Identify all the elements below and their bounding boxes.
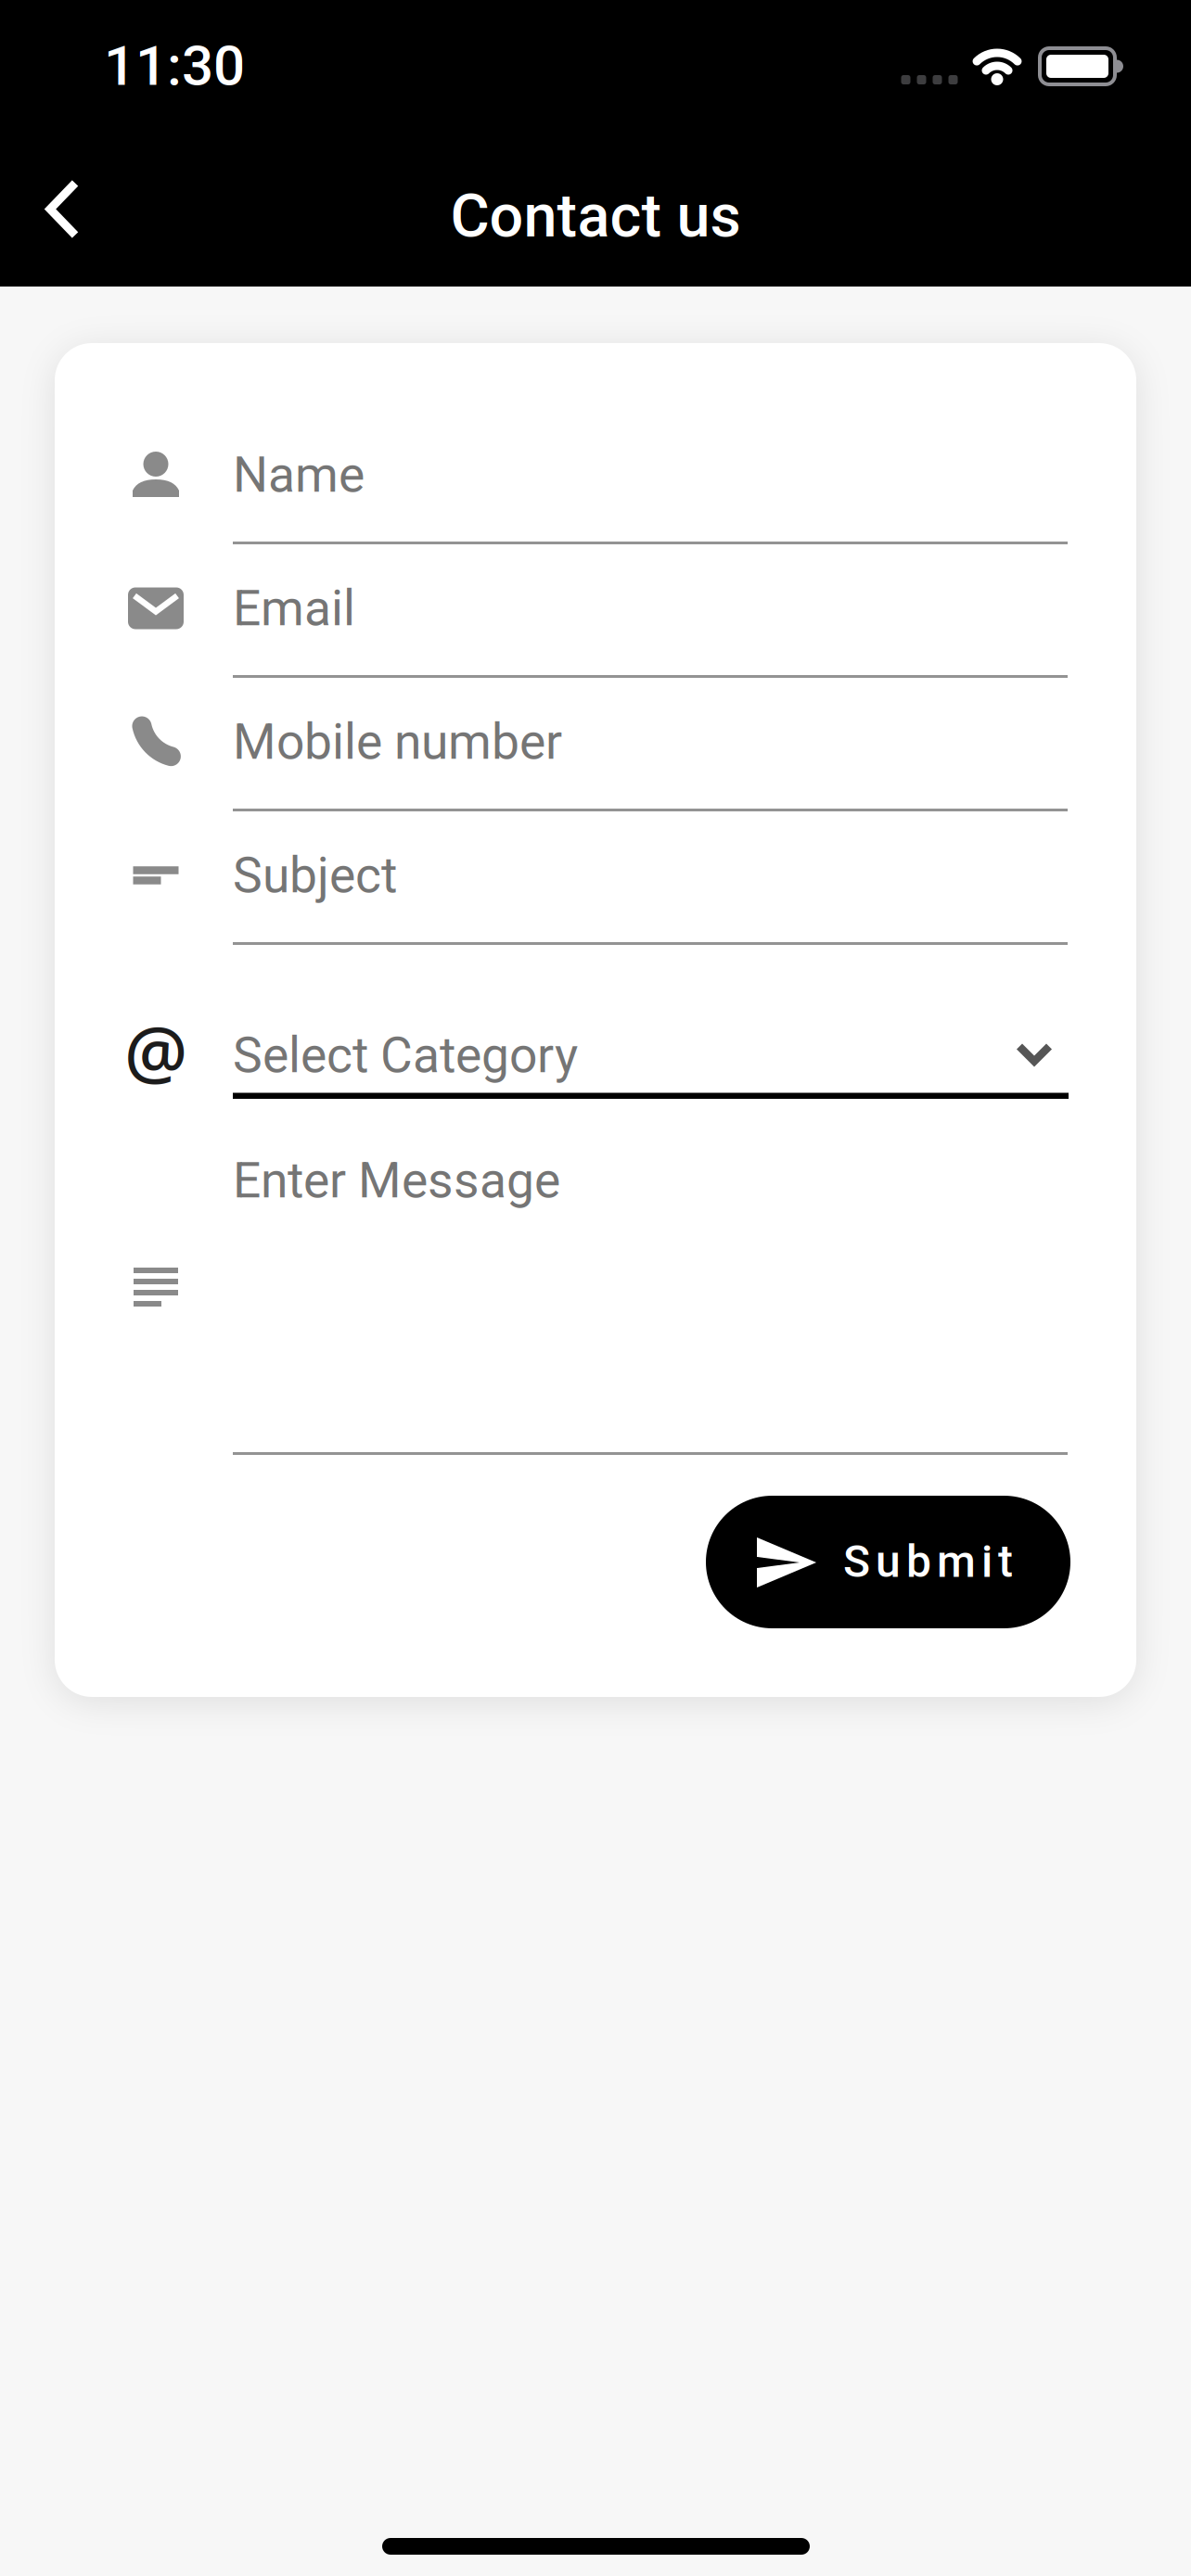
button[interactable]: Submit (706, 1496, 1070, 1628)
staticText: Contact us (450, 181, 741, 251)
button[interactable]: Select Category (233, 1031, 1069, 1105)
staticText: @ (124, 1004, 187, 1097)
button[interactable]: Back (14, 163, 107, 255)
staticText: Enter Message (233, 1152, 560, 1209)
staticText: Submit (843, 1535, 1013, 1588)
staticText: Mobile number (233, 713, 562, 771)
staticText: Email (233, 579, 355, 637)
staticText: Subject (233, 846, 397, 904)
staticText: Name (233, 446, 365, 504)
staticText: Select Category (233, 1026, 578, 1084)
staticText: 11:30 (104, 33, 245, 98)
